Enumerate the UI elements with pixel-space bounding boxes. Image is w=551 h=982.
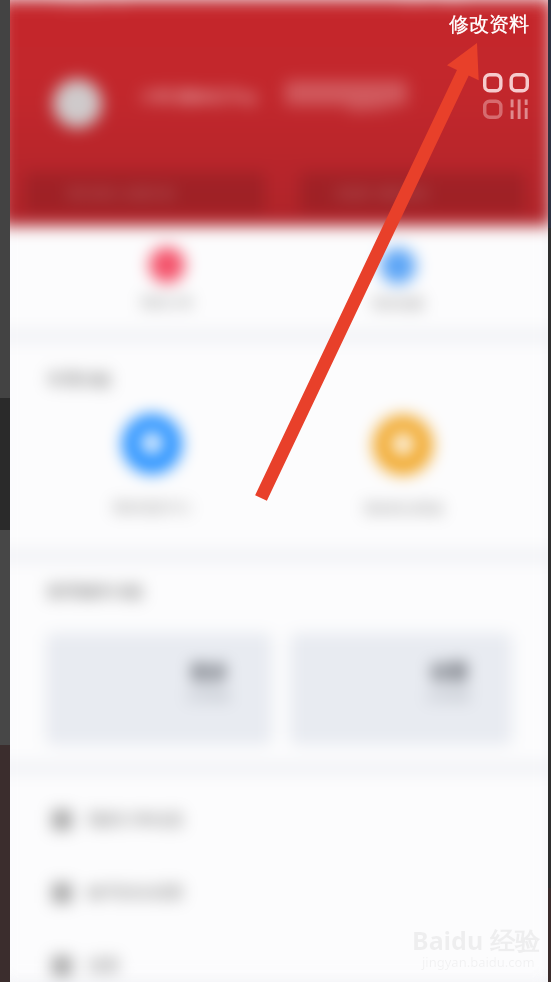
button[interactable]: 优惠券 领取福利	[300, 172, 525, 212]
button[interactable]: 我的订单信息	[0, 792, 551, 848]
staticText: 中国移动 4G	[52, 0, 128, 10]
button[interactable]: 账号安全设置	[0, 865, 551, 921]
button[interactable]: 我的钱包 余额充值	[25, 172, 265, 212]
staticText: 立即查看	[426, 689, 470, 703]
staticText: 小明 昵称名字xy	[140, 85, 257, 107]
button[interactable]: 设置	[0, 938, 551, 982]
staticText: 账号安全设置	[88, 883, 184, 903]
staticText: 会员中心	[348, 101, 388, 114]
staticText: 14:05 84%	[396, 0, 466, 10]
button[interactable]: 更多	[46, 633, 272, 745]
button[interactable]: QR code	[483, 73, 529, 119]
staticText: 优惠券 领取福利	[334, 184, 429, 202]
staticText: Baidu 经验	[412, 923, 540, 957]
staticText: 设置	[88, 956, 120, 976]
button[interactable]: 我的收藏	[342, 240, 454, 317]
staticText: 更多	[190, 661, 228, 685]
staticText: 常用功能	[47, 370, 111, 390]
button[interactable]: 设置	[290, 633, 512, 745]
button[interactable]: 我的订单	[111, 239, 223, 316]
button[interactable]: Avatar	[53, 79, 102, 128]
button[interactable]: 我的积分商城	[347, 407, 459, 522]
staticText: 设置	[430, 661, 468, 685]
staticText: 修改资料	[449, 12, 529, 37]
staticText: 我的消息中心	[113, 499, 191, 515]
staticText: 我的收藏	[372, 295, 424, 311]
staticText: 推荐服务功能	[47, 582, 143, 602]
staticText: 我的订单信息	[88, 810, 184, 830]
button[interactable]: 我的消息中心	[96, 406, 208, 521]
staticText: 立即查看	[186, 689, 230, 703]
